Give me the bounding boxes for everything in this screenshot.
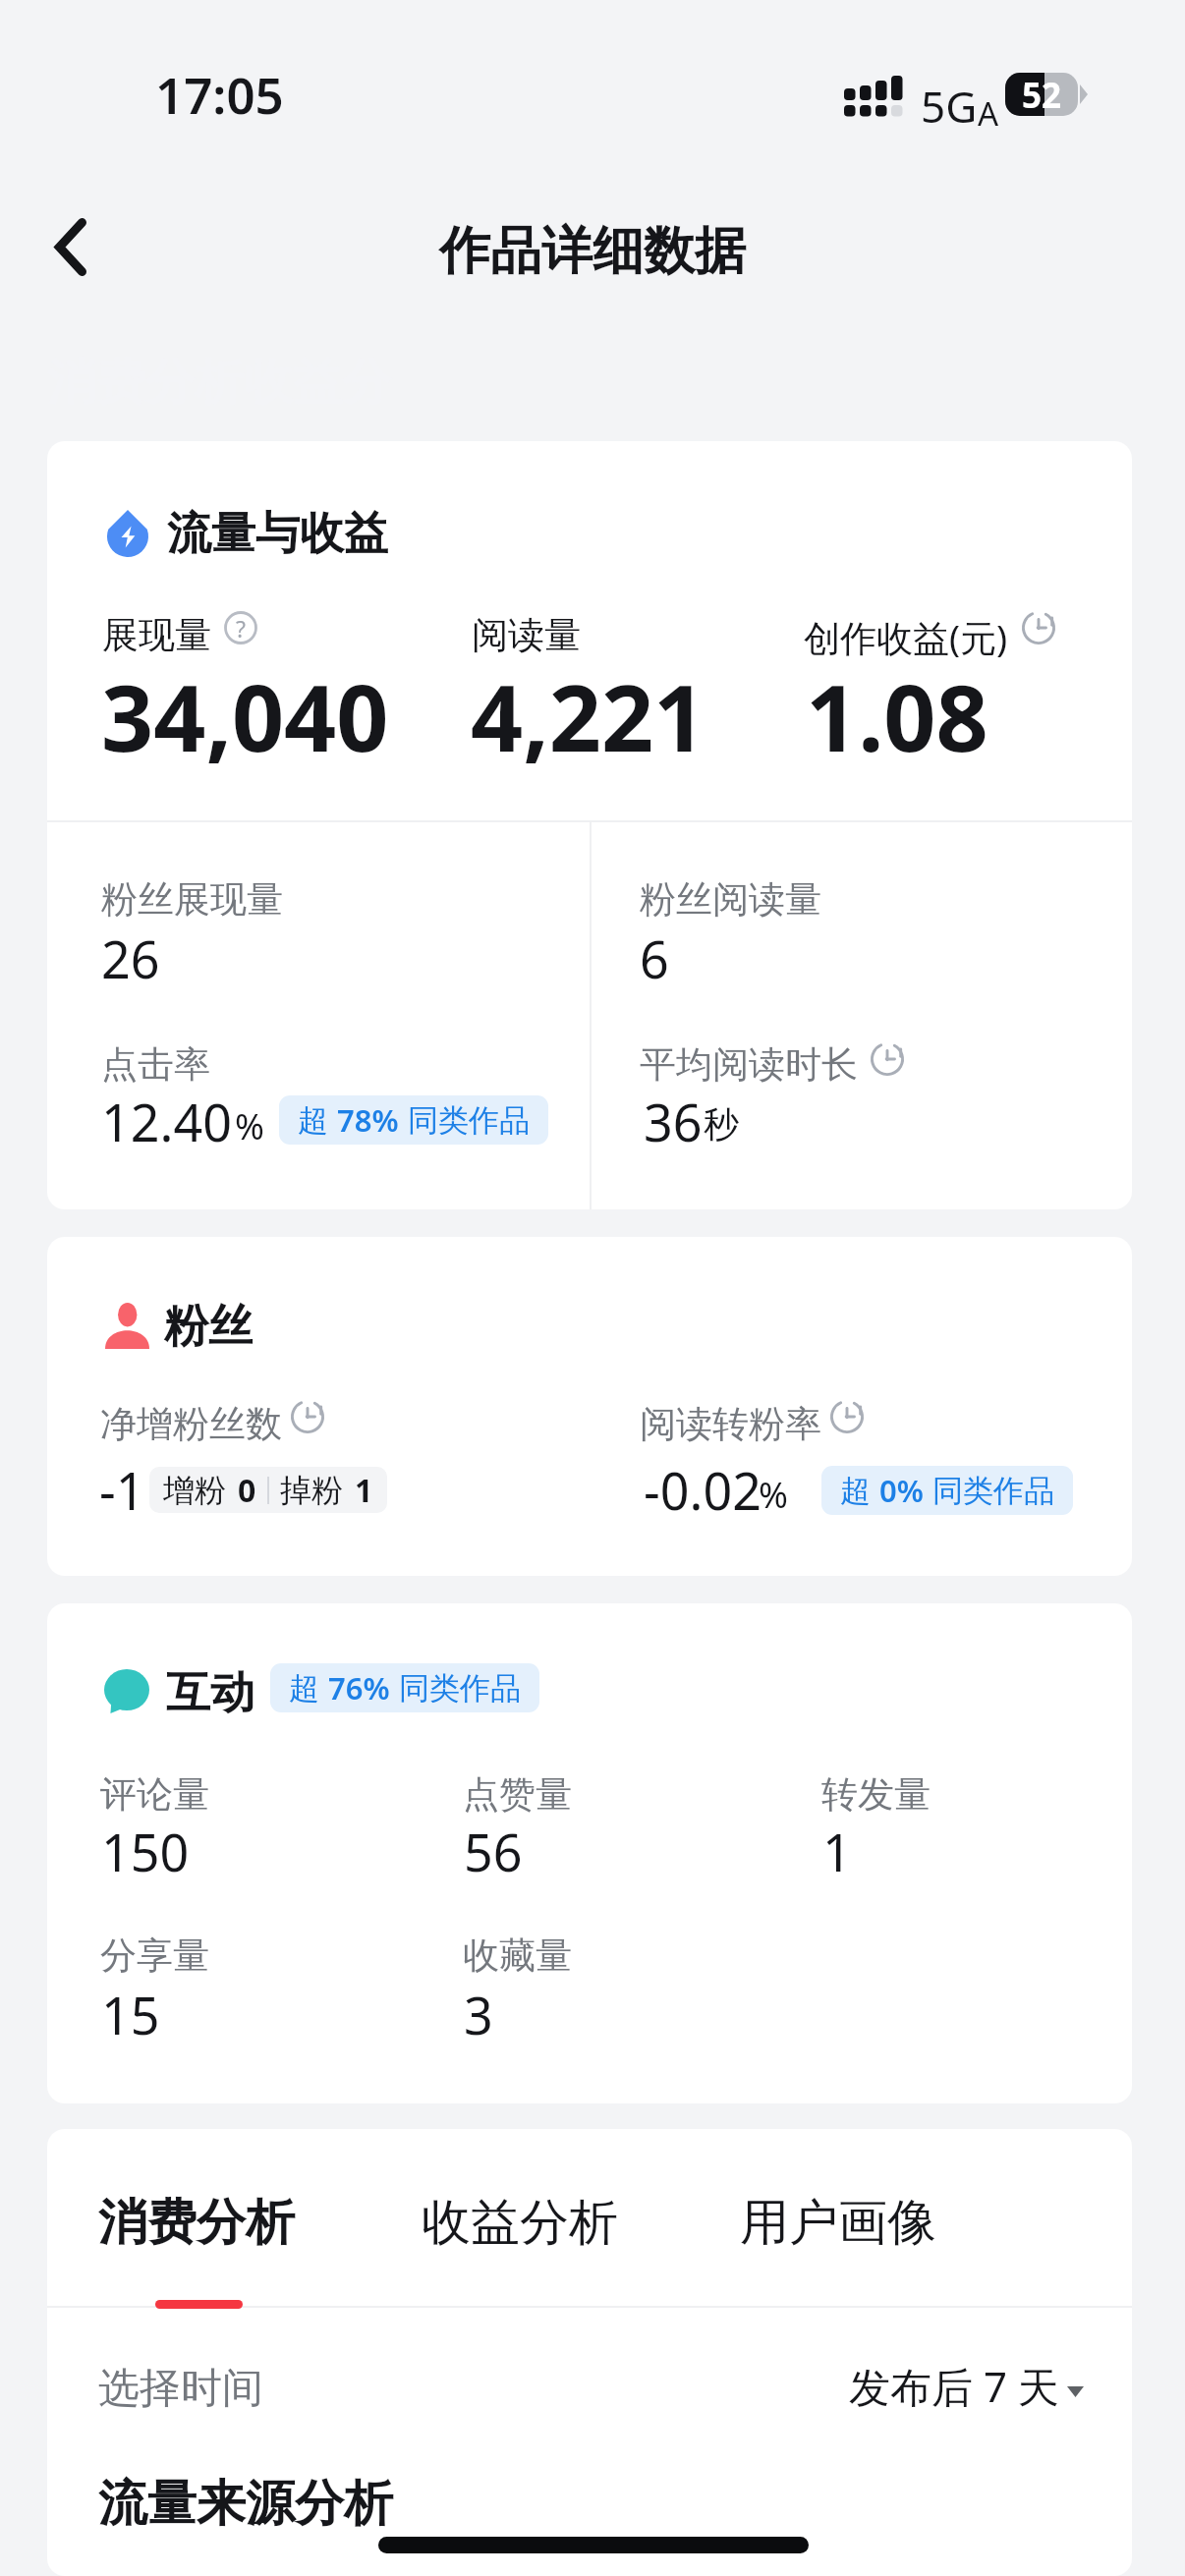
staticText: 作品详细数据 xyxy=(439,219,746,284)
button[interactable]: 收益分析 xyxy=(371,2129,696,2306)
staticText: 流量来源分析 xyxy=(98,2473,393,2535)
staticText: 平均阅读时长 xyxy=(640,1041,858,1088)
staticText: -0.02 xyxy=(644,1455,762,1525)
staticText: 150 xyxy=(101,1817,190,1886)
staticText: 12.40 xyxy=(101,1087,232,1156)
staticText: 阅读量 xyxy=(472,612,581,658)
staticText: % xyxy=(235,1102,264,1150)
staticText: 34,040 xyxy=(101,654,389,779)
staticText: 同类作品 xyxy=(932,1472,1054,1510)
staticText: 5G xyxy=(921,77,978,136)
staticText: 收藏量 xyxy=(463,1932,572,1979)
staticText: 点击率 xyxy=(101,1041,210,1088)
staticText: 52 xyxy=(1022,73,1062,115)
button[interactable]: Back xyxy=(17,193,125,301)
staticText: 创作收益(元) xyxy=(804,612,1008,662)
staticText: 粉丝阅读量 xyxy=(640,876,821,923)
staticText: 粉丝展现量 xyxy=(101,876,283,923)
staticText: 超 xyxy=(289,1669,319,1708)
staticText: 粉丝 xyxy=(164,1299,253,1355)
staticText: 用户画像 xyxy=(740,2192,936,2254)
staticText: 互动 xyxy=(166,1665,254,1721)
button[interactable]: 发布后 7 天 xyxy=(830,2350,1096,2415)
staticText: 增粉 xyxy=(163,1471,226,1510)
staticText: 消费分析 xyxy=(98,2192,295,2254)
staticText: 超 xyxy=(298,1101,328,1140)
staticText: 同类作品 xyxy=(408,1101,530,1140)
staticText: 选择时间 xyxy=(98,2363,263,2415)
staticText: -1 xyxy=(99,1455,145,1525)
staticText: 56 xyxy=(464,1817,523,1886)
staticText: 掉粉 xyxy=(280,1471,343,1510)
staticText: 净增粉丝数 xyxy=(100,1401,282,1447)
staticText: 转发量 xyxy=(821,1771,931,1818)
staticText: 收益分析 xyxy=(422,2192,618,2254)
staticText: A xyxy=(978,91,999,136)
staticText: 流量与收益 xyxy=(167,506,388,562)
staticText: 分享量 xyxy=(100,1932,209,1979)
staticText: 0 xyxy=(238,1469,256,1512)
staticText: 26 xyxy=(101,924,160,993)
staticText: 1 xyxy=(822,1817,852,1886)
staticText: 36 xyxy=(644,1087,703,1156)
button[interactable]: 消费分析 xyxy=(47,2129,371,2306)
staticText: 15 xyxy=(101,1980,160,2049)
staticText: 超 xyxy=(840,1472,871,1510)
staticText: % xyxy=(759,1471,788,1519)
staticText: 76% xyxy=(328,1667,390,1708)
staticText: 发布后 7 天 xyxy=(849,2358,1059,2414)
staticText: 阅读转粉率 xyxy=(640,1401,821,1447)
staticText: 1.08 xyxy=(806,654,988,779)
staticText: 点赞量 xyxy=(463,1771,572,1818)
staticText: 0% xyxy=(879,1470,924,1511)
staticText: 1 xyxy=(355,1469,373,1512)
staticText: 17:05 xyxy=(155,60,284,128)
staticText: 78% xyxy=(337,1099,399,1141)
button[interactable]: 用户画像 xyxy=(696,2129,1020,2306)
staticText: 6 xyxy=(640,924,669,993)
staticText: 3 xyxy=(464,1980,493,2049)
staticText: 评论量 xyxy=(100,1771,209,1818)
staticText: 同类作品 xyxy=(399,1669,521,1708)
staticText: 4,221 xyxy=(471,654,706,779)
staticText: ? xyxy=(236,613,246,644)
staticText: 秒 xyxy=(704,1102,739,1147)
staticText: 展现量 xyxy=(102,612,211,658)
